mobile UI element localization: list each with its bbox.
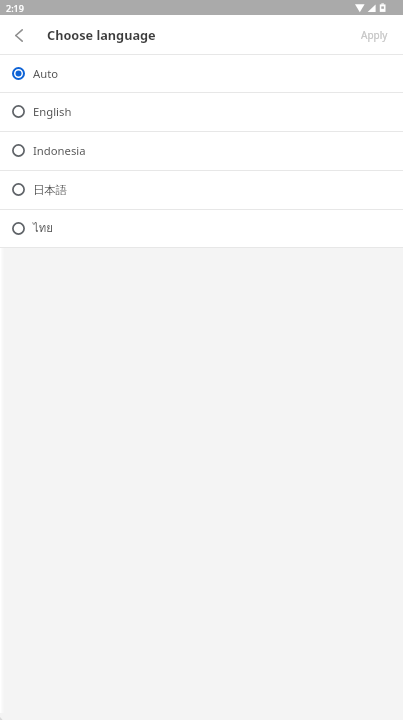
staticText: 日本語 [33, 183, 67, 197]
staticText: Choose language [47, 26, 156, 43]
button[interactable]: 日本語 [0, 171, 403, 209]
button[interactable]: Auto [0, 55, 403, 92]
staticText: English [33, 104, 72, 119]
staticText: Apply [361, 28, 388, 42]
staticText: ไทย [33, 219, 53, 237]
button[interactable]: English [0, 93, 403, 131]
button[interactable]: Back [0, 16, 38, 54]
staticText: Indonesia [33, 143, 86, 158]
button[interactable]: Apply [346, 18, 403, 52]
staticText: 2:19 [6, 2, 24, 14]
button[interactable]: Indonesia [0, 132, 403, 170]
staticText: Auto [33, 66, 59, 81]
button[interactable]: ไทย [0, 210, 403, 247]
